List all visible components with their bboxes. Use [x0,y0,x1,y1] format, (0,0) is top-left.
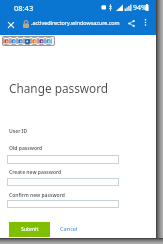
staticText: .activedirectory.windowsazure.com [31,19,120,26]
staticText: Change password [9,80,109,96]
button[interactable]: App shortcut [3,37,10,45]
button[interactable]: App shortcut [24,37,31,45]
button[interactable]: More options [138,15,153,30]
button[interactable]: App shortcut [31,37,38,45]
staticText: User ID [9,128,28,135]
staticText: Submit [21,225,39,232]
button[interactable]: App shortcut [38,37,45,45]
button[interactable]: App shortcut [17,37,24,45]
staticText: 08:43 [14,3,34,13]
button[interactable]: Text field [7,178,119,186]
staticText: Confirm new password [9,192,65,199]
button[interactable]: Cancel [57,222,81,236]
button[interactable]: Share [123,15,139,31]
button[interactable]: App shortcut [45,37,52,45]
staticText: Create new password [9,169,62,176]
staticText: 94% [133,3,147,13]
button[interactable]: Text field [7,155,119,164]
button[interactable]: Text field [7,200,119,208]
staticText: Old password [9,145,43,152]
button[interactable]: Submit [9,222,50,237]
button[interactable]: Close [2,16,20,34]
button[interactable]: App shortcut [10,37,17,45]
staticText: Cancel [60,225,78,233]
